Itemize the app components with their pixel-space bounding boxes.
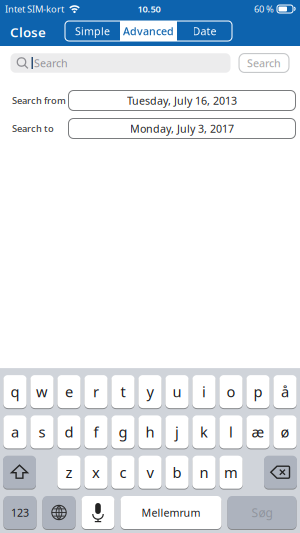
button[interactable]: s	[30, 415, 54, 449]
button[interactable]: y	[138, 375, 162, 409]
button[interactable]: Shift	[3, 455, 36, 489]
button[interactable]: d	[57, 415, 81, 449]
staticText: Search	[34, 56, 68, 70]
button[interactable]: Søg	[227, 495, 296, 529]
button[interactable]: p	[246, 375, 270, 409]
button[interactable]: u	[165, 375, 189, 409]
button[interactable]: o	[219, 375, 243, 409]
button[interactable]: æ	[246, 415, 270, 449]
button[interactable]: ø	[273, 415, 297, 449]
staticText: Date	[192, 24, 216, 38]
staticText: Search from	[12, 94, 66, 107]
staticText: 60 %	[254, 3, 274, 15]
button[interactable]: Monday, July 3, 2017	[68, 118, 296, 139]
staticText: a	[11, 422, 19, 442]
button[interactable]: Delete	[264, 455, 297, 489]
button[interactable]: 123	[3, 495, 36, 529]
button[interactable]: f	[84, 415, 108, 449]
button[interactable]: g	[111, 415, 135, 449]
staticText: m	[224, 462, 238, 482]
staticText: Monday, July 3, 2017	[130, 121, 234, 136]
staticText: d	[64, 422, 73, 442]
button[interactable]: Tuesday, July 16, 2013	[68, 90, 296, 111]
button[interactable]: m	[219, 455, 243, 489]
button[interactable]: Date	[177, 21, 232, 41]
button[interactable]: k	[192, 415, 216, 449]
staticText: Simple	[75, 24, 110, 38]
staticText: Mellemrum	[141, 505, 200, 520]
staticText: Close	[10, 23, 46, 41]
staticText: g	[118, 422, 127, 442]
staticText: r	[93, 382, 99, 401]
button[interactable]: e	[57, 375, 81, 409]
button[interactable]: h	[138, 415, 162, 449]
button[interactable]: Search	[238, 53, 289, 73]
button[interactable]: b	[165, 455, 189, 489]
staticText: u	[172, 382, 181, 401]
button[interactable]: å	[273, 375, 297, 409]
button[interactable]: Search	[10, 53, 230, 73]
staticText: Advanced	[123, 24, 174, 38]
button[interactable]: a	[3, 415, 27, 449]
staticText: o	[226, 382, 235, 401]
staticText: h	[145, 422, 154, 442]
staticText: Search to	[12, 122, 54, 135]
staticText: v	[146, 462, 153, 482]
staticText: x	[92, 462, 100, 482]
staticText: w	[36, 382, 48, 401]
button[interactable]: i	[192, 375, 216, 409]
staticText: f	[93, 422, 98, 442]
button[interactable]: t	[111, 375, 135, 409]
staticText: Intet SIM-kort	[5, 3, 64, 15]
staticText: 10.50	[137, 3, 160, 15]
button[interactable]: z	[57, 455, 81, 489]
staticText: 123	[11, 505, 29, 520]
button[interactable]: Next keyboard	[42, 495, 75, 529]
staticText: e	[65, 382, 73, 401]
button[interactable]: Close	[0, 23, 46, 41]
staticText: Search	[247, 56, 281, 70]
staticText: å	[281, 382, 289, 401]
staticText: l	[229, 422, 233, 442]
button[interactable]: q	[3, 375, 27, 409]
button[interactable]: x	[84, 455, 108, 489]
button[interactable]: l	[219, 415, 243, 449]
button[interactable]: Advanced	[121, 21, 176, 41]
staticText: i	[202, 382, 206, 401]
button[interactable]: Mellemrum	[120, 495, 221, 529]
button[interactable]: Dictate	[81, 495, 114, 529]
staticText: z	[65, 462, 72, 482]
button[interactable]: v	[138, 455, 162, 489]
button[interactable]: w	[30, 375, 54, 409]
staticText: s	[38, 422, 45, 442]
staticText: y	[146, 382, 153, 401]
staticText: Tuesday, July 16, 2013	[127, 93, 237, 108]
staticText: n	[199, 462, 208, 482]
staticText: j	[175, 422, 179, 442]
button[interactable]: j	[165, 415, 189, 449]
staticText: k	[200, 422, 208, 442]
button[interactable]: Simple	[65, 21, 120, 41]
staticText: Søg	[251, 504, 272, 520]
staticText: p	[253, 382, 262, 401]
staticText: ø	[280, 422, 289, 442]
button[interactable]: c	[111, 455, 135, 489]
staticText: q	[10, 382, 19, 401]
staticText: b	[172, 462, 181, 482]
staticText: t	[120, 382, 125, 401]
button[interactable]: n	[192, 455, 216, 489]
button[interactable]: r	[84, 375, 108, 409]
staticText: æ	[251, 422, 264, 442]
staticText: c	[119, 462, 126, 482]
